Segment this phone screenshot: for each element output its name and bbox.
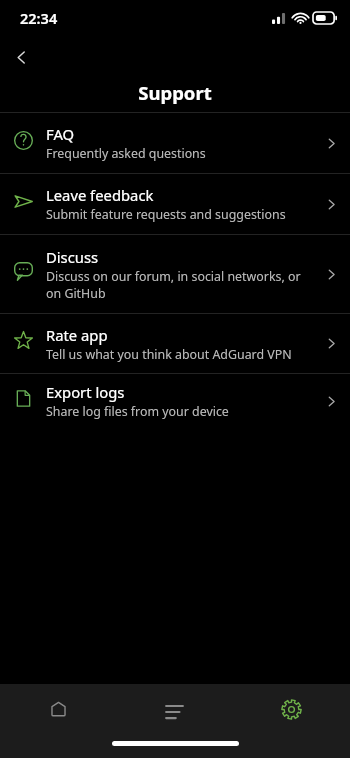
staticText: Submit feature requests and suggestions: [46, 206, 286, 223]
staticText: Rate app: [46, 325, 108, 345]
staticText: Leave feedback: [46, 185, 154, 205]
button[interactable]: Home: [0, 684, 116, 734]
button[interactable]: Export logs: [0, 374, 350, 428]
button[interactable]: Exclusions: [116, 684, 233, 734]
staticText: Support: [0, 80, 350, 105]
button[interactable]: FAQ: [0, 113, 350, 173]
staticText: Discuss on our forum, in social networks…: [46, 268, 301, 301]
staticText: Frequently asked questions: [46, 145, 206, 162]
staticText: Share log files from your device: [46, 403, 229, 420]
staticText: 22:34: [20, 8, 58, 28]
staticText: Discuss: [46, 247, 99, 267]
button[interactable]: Settings: [233, 684, 350, 734]
staticText: Tell us what you think about AdGuard VPN: [46, 346, 292, 363]
button[interactable]: Back: [4, 40, 38, 74]
button[interactable]: Rate app: [0, 314, 350, 373]
staticText: Export logs: [46, 382, 125, 402]
staticText: FAQ: [46, 124, 75, 144]
button[interactable]: Leave feedback: [0, 174, 350, 234]
button[interactable]: Discuss: [0, 235, 350, 313]
